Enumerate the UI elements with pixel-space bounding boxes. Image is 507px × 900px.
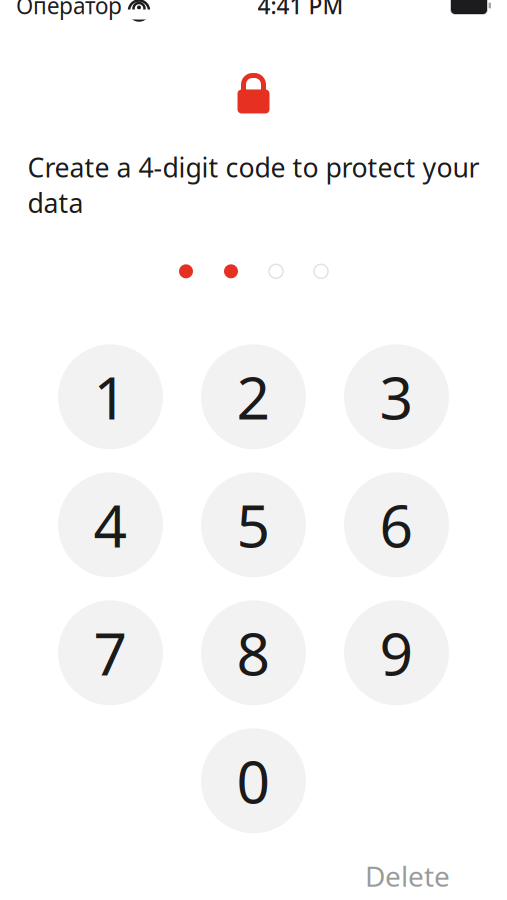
staticText: 4:41 PM [257, 0, 343, 20]
button[interactable]: 3 [344, 344, 449, 449]
staticText: 5 [236, 486, 270, 564]
button[interactable]: 8 [201, 600, 306, 705]
staticText: 1 [93, 358, 127, 436]
staticText: 3 [379, 358, 413, 436]
staticText: 8 [236, 614, 270, 692]
button[interactable]: 1 [58, 344, 163, 449]
button[interactable]: 7 [58, 600, 163, 705]
staticText: 6 [379, 486, 413, 564]
button[interactable]: 5 [201, 472, 306, 577]
button[interactable]: 9 [344, 600, 449, 705]
staticText: Create a 4-digit code to protect your da… [27, 149, 479, 220]
staticText: 0 [236, 742, 270, 820]
staticText: 9 [379, 614, 413, 692]
staticText: 4 [93, 486, 127, 564]
button[interactable]: 2 [201, 344, 306, 449]
staticText: 2 [236, 358, 270, 436]
button[interactable]: 0 [201, 728, 306, 833]
staticText: Оператор [16, 0, 122, 20]
button[interactable]: 6 [344, 472, 449, 577]
staticText: 7 [93, 614, 127, 692]
button[interactable]: 4 [58, 472, 163, 577]
button[interactable]: Delete [353, 847, 462, 900]
staticText: Delete [365, 857, 450, 894]
